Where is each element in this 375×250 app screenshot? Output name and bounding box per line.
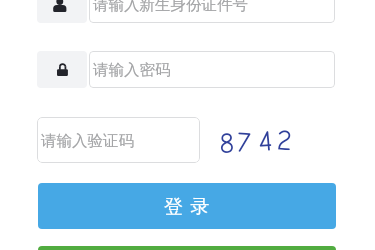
staticText: 请输入新生身份证件号: [93, 0, 248, 15]
staticText: 2: [276, 124, 294, 150]
button[interactable]: 请输入新生身份证件号: [89, 0, 335, 23]
button[interactable]: [38, 246, 336, 250]
staticText: 请输入密码: [93, 60, 171, 80]
staticText: 8: [218, 127, 235, 153]
button[interactable]: 登 录: [38, 183, 336, 229]
button[interactable]: User: [37, 0, 87, 23]
staticText: 4: [257, 124, 274, 152]
staticText: 请输入验证码: [41, 131, 134, 151]
staticText: 登 录: [164, 193, 211, 219]
staticText: 7: [236, 125, 252, 152]
button[interactable]: 请输入验证码: [37, 117, 200, 163]
button[interactable]: Captcha 8742, tap to refresh: [219, 128, 295, 154]
button[interactable]: 请输入密码: [89, 51, 335, 88]
button[interactable]: Password: [37, 51, 87, 88]
